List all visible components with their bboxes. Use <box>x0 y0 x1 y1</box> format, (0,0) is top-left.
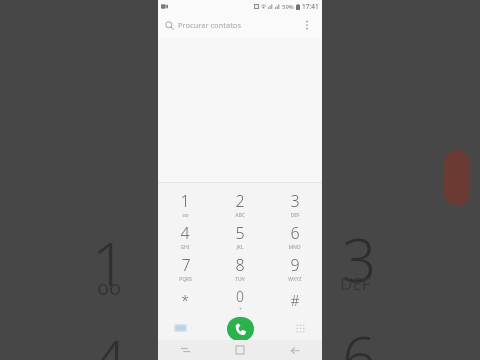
staticText: 3 <box>290 190 300 212</box>
staticText: + <box>239 306 242 313</box>
staticText: ABC <box>235 212 245 219</box>
button[interactable]: More <box>290 318 310 338</box>
staticText: 3 <box>342 218 377 300</box>
button[interactable]: 0 <box>212 284 267 316</box>
button[interactable]: Back <box>267 340 322 360</box>
staticText: 4 <box>180 222 190 244</box>
button[interactable]: 3 <box>267 188 322 220</box>
staticText: 7 <box>181 254 191 276</box>
staticText: 59% <box>282 3 294 11</box>
button[interactable]: 8 <box>212 252 267 284</box>
button[interactable]: 4 <box>158 220 212 252</box>
button[interactable]: 5 <box>212 220 267 252</box>
staticText: oo <box>182 212 189 219</box>
staticText: DEF <box>340 272 371 295</box>
staticText: 4 <box>92 320 127 360</box>
button[interactable]: 2 <box>212 188 267 220</box>
button[interactable]: More options <box>299 17 315 33</box>
staticText: 8 <box>235 254 245 276</box>
staticText: oo <box>97 274 122 301</box>
staticText: # <box>290 291 300 310</box>
staticText: GHI <box>180 244 190 251</box>
button[interactable]: 1 <box>158 188 212 220</box>
staticText: 1 <box>180 190 190 212</box>
staticText: 6 <box>290 222 300 244</box>
button[interactable]: Keypad <box>170 318 190 338</box>
button[interactable]: * <box>158 284 212 316</box>
staticText: DEF <box>290 212 300 219</box>
button[interactable]: # <box>267 284 322 316</box>
staticText: PQRS <box>179 276 192 283</box>
button[interactable]: 7 <box>158 252 212 284</box>
button[interactable]: Home <box>212 340 267 360</box>
staticText: Procurar contatos <box>178 20 299 30</box>
button[interactable]: Call <box>227 317 254 341</box>
staticText: 2 <box>235 190 245 212</box>
staticText: TUV <box>235 276 245 283</box>
staticText: * <box>181 291 189 310</box>
button[interactable]: Procurar contatos <box>158 12 322 38</box>
button[interactable]: 9 <box>267 252 322 284</box>
button[interactable]: Recents <box>158 340 212 360</box>
staticText: WXYZ <box>288 276 302 283</box>
staticText: JKL <box>236 244 244 251</box>
staticText: 17:41 <box>302 2 319 11</box>
button[interactable]: 6 <box>267 220 322 252</box>
staticText: 0 <box>236 287 244 306</box>
staticText: 5 <box>235 222 245 244</box>
staticText: 6 <box>342 316 377 360</box>
staticText: 1 <box>92 222 127 304</box>
staticText: 9 <box>290 254 300 276</box>
staticText: MNO <box>288 244 301 251</box>
